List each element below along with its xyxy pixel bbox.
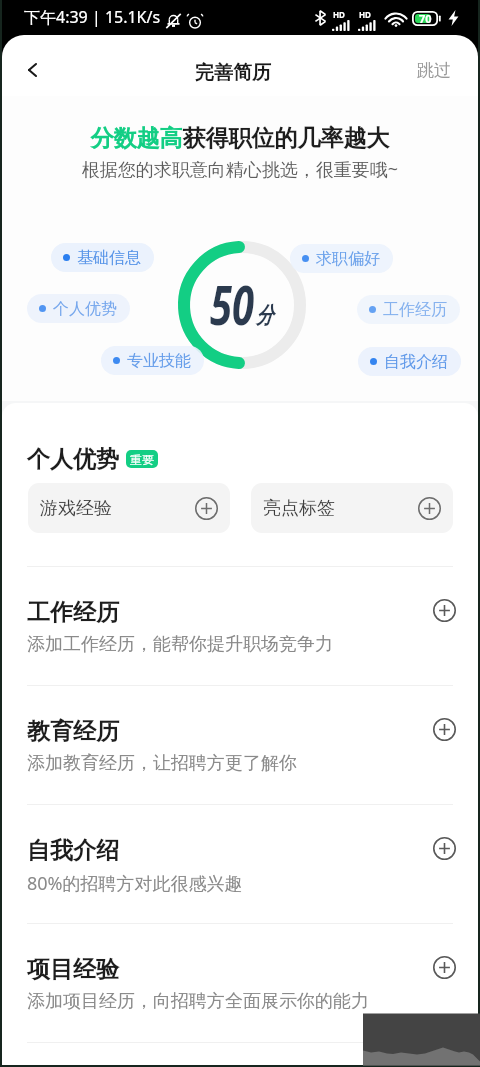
staticText: 根据您的求职意向精心挑选，很重要哦~: [2, 157, 478, 182]
staticText: 下午4:39 | 15.1K/s: [24, 6, 161, 28]
staticText: 80%的招聘方对此很感兴趣: [27, 871, 243, 896]
staticText: 重要: [130, 452, 154, 467]
other: 添加: [418, 497, 441, 520]
staticText: 添加项目经历，向招聘方全面展示你的能力: [27, 990, 369, 1013]
button[interactable]: 项目经验: [2, 924, 478, 1042]
staticText: 自我介绍: [27, 836, 119, 865]
staticText: 亮点标签: [263, 497, 335, 520]
button[interactable]: 自我介绍: [2, 805, 478, 923]
other: 添加: [433, 599, 456, 622]
staticText: 工作经历: [383, 300, 447, 320]
other: 添加: [195, 497, 218, 520]
staticText: 个人优势: [53, 299, 117, 319]
staticText: 跳过: [417, 60, 451, 81]
staticText: 个人优势: [27, 445, 119, 474]
button[interactable]: 工作经历: [2, 567, 478, 685]
staticText: 工作经历: [27, 598, 119, 627]
staticText: 50: [210, 268, 255, 340]
staticText: 求职偏好: [316, 249, 380, 269]
staticText: 游戏经验: [40, 497, 112, 520]
button[interactable]: 返回: [18, 56, 46, 84]
staticText: 添加教育经历，让招聘方更了解你: [27, 752, 297, 775]
button[interactable]: 自我介绍: [358, 347, 461, 376]
button[interactable]: 游戏经验: [28, 483, 230, 533]
staticText: 添加工作经历，能帮你提升职场竞争力: [27, 633, 333, 656]
staticText: 教育经历: [27, 717, 119, 746]
button[interactable]: 亮点标签: [251, 483, 453, 533]
staticText: 分数越高获得职位的几率越大: [2, 124, 478, 153]
staticText: HD: [359, 9, 371, 20]
staticText: 专业技能: [127, 351, 191, 371]
button[interactable]: 跳过: [407, 53, 461, 88]
other: 添加: [433, 837, 456, 860]
staticText: 分: [256, 302, 273, 331]
staticText: 基础信息: [77, 248, 141, 268]
button[interactable]: 工作经历: [357, 295, 460, 324]
button[interactable]: 教育经历: [2, 686, 478, 804]
button[interactable]: 基础信息: [51, 243, 154, 272]
staticText: HD: [333, 9, 345, 20]
button[interactable]: 求职偏好: [290, 244, 393, 273]
staticText: 自我介绍: [384, 352, 448, 372]
staticText: 70: [419, 11, 432, 26]
staticText: 完善简历: [195, 61, 271, 85]
button[interactable]: 专业技能: [101, 346, 204, 375]
button[interactable]: 个人优势: [27, 294, 130, 323]
other: 添加: [433, 956, 456, 979]
other: 添加: [433, 718, 456, 741]
staticText: 项目经验: [27, 955, 119, 984]
